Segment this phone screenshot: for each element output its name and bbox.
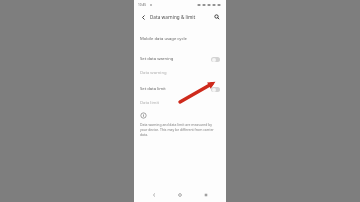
staticText: Mobile data usage cycle	[140, 36, 187, 42]
staticText: 10:45	[138, 3, 147, 7]
button[interactable]: Data warning	[134, 66, 226, 80]
staticText: Data warning & limit	[150, 14, 196, 20]
staticText: Set data limit	[140, 86, 166, 92]
button[interactable]: Set data limit	[134, 82, 226, 96]
staticText: Data warning and data limit are measured…	[140, 122, 220, 137]
staticText: Set data warning	[140, 56, 174, 62]
button[interactable]: Mobile data usage cycle	[134, 33, 226, 45]
button[interactable]: Set data warning	[134, 52, 226, 66]
button[interactable]: Back	[138, 12, 148, 22]
staticText: Data warning	[140, 70, 167, 76]
button[interactable]: Back	[148, 189, 160, 201]
button[interactable]: Recent apps	[200, 189, 212, 201]
button[interactable]: Search	[212, 12, 222, 22]
button[interactable]: Home	[174, 189, 186, 201]
staticText: Data limit	[140, 100, 160, 106]
button[interactable]: Data limit	[134, 96, 226, 110]
